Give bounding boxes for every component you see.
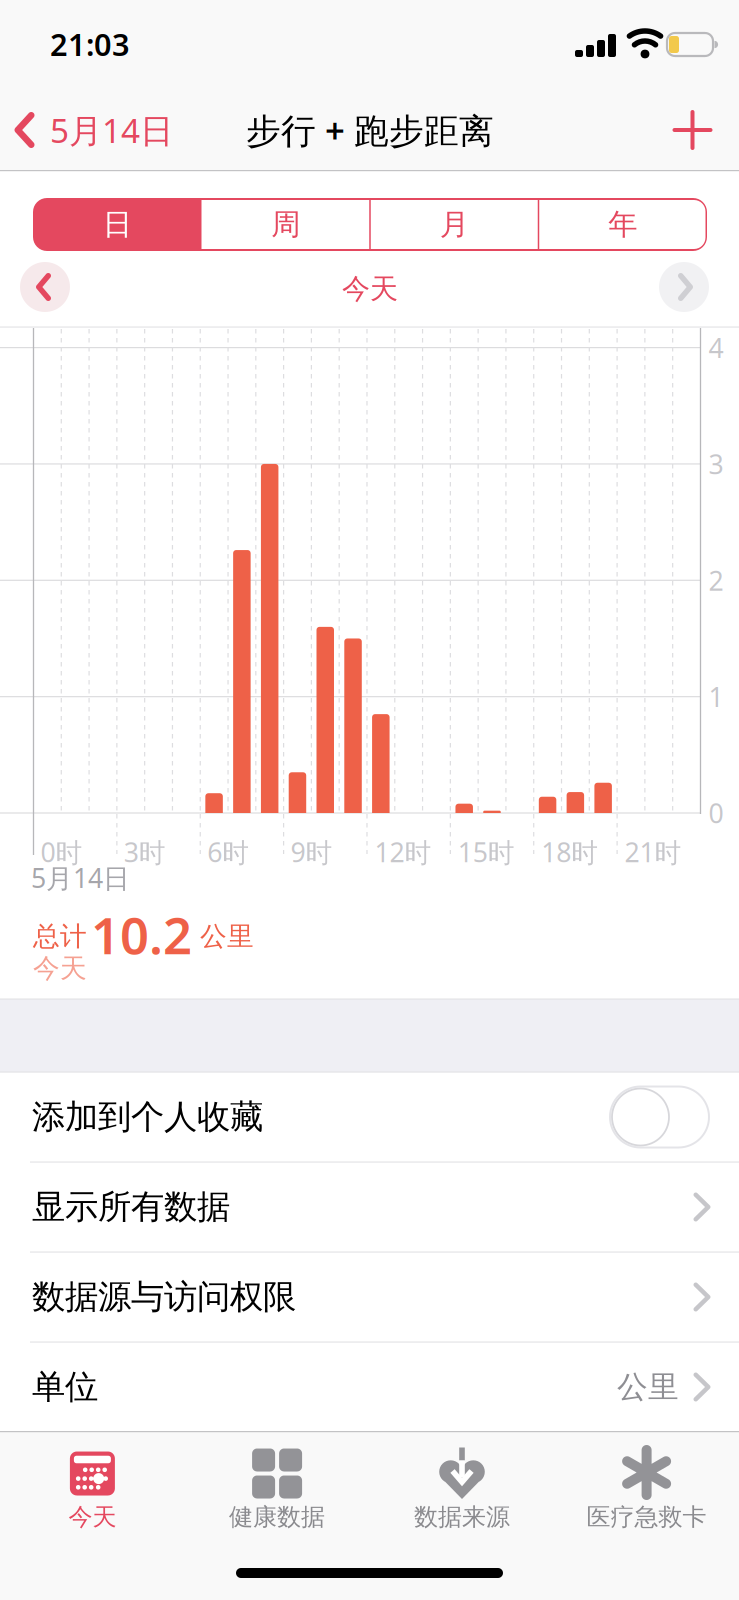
staticText: 今天	[33, 952, 87, 985]
staticText: 18时	[541, 834, 598, 870]
staticText: 周	[271, 206, 300, 242]
staticText: 月	[440, 206, 469, 242]
staticText: 3	[708, 446, 723, 482]
staticText: 单位	[32, 1366, 98, 1407]
button[interactable]: 显示所有数据	[0, 1162, 739, 1252]
staticText: 0时	[40, 834, 82, 870]
staticText: 总计	[33, 920, 87, 953]
staticText: 今天	[342, 272, 398, 306]
button[interactable]: 5月14日	[0, 90, 280, 170]
staticText: 2	[708, 563, 723, 598]
staticText: 步行 + 跑步距离	[246, 107, 494, 153]
staticText: 6时	[207, 834, 249, 870]
button[interactable]	[659, 262, 709, 312]
staticText: 10.2	[91, 901, 192, 968]
staticText: 添加到个人收藏	[32, 1096, 263, 1137]
button[interactable]: 数据源与访问权限	[0, 1252, 739, 1342]
staticText: 医疗急救卡	[587, 1502, 707, 1532]
button[interactable]: 日	[33, 198, 201, 251]
button[interactable]: 年	[538, 198, 707, 251]
button[interactable]: 数据来源	[370, 1432, 554, 1542]
staticText: 显示所有数据	[32, 1186, 230, 1227]
button[interactable]	[662, 100, 722, 160]
staticText: 5月14日	[50, 108, 173, 152]
button[interactable]: 今天	[0, 1432, 184, 1542]
staticText: 21时	[625, 834, 682, 870]
staticText: 公里	[617, 1368, 679, 1406]
staticText: 年	[608, 206, 637, 242]
button[interactable]: 健康数据	[185, 1432, 369, 1542]
staticText: 日	[103, 206, 132, 242]
staticText: 1	[708, 679, 723, 714]
staticText: 0	[708, 795, 723, 831]
staticText: 21:03	[50, 24, 130, 64]
staticText: 数据来源	[414, 1502, 510, 1532]
staticText: 5月14日	[31, 860, 130, 895]
staticText: 今天	[68, 1502, 116, 1532]
staticText: 公里	[200, 920, 254, 953]
staticText: 15时	[458, 834, 515, 870]
button[interactable]	[610, 1086, 709, 1147]
staticText: 数据源与访问权限	[32, 1276, 296, 1317]
button[interactable]: 单位	[0, 1342, 739, 1432]
button[interactable]: 周	[201, 198, 370, 251]
staticText: 健康数据	[229, 1502, 325, 1532]
button[interactable]: 月	[370, 198, 538, 251]
staticText: 9时	[291, 834, 333, 870]
button[interactable]: 医疗急救卡	[555, 1432, 739, 1542]
staticText: 12时	[374, 834, 431, 870]
staticText: 3时	[124, 834, 166, 870]
button[interactable]	[20, 262, 70, 312]
staticText: 4	[708, 330, 723, 365]
